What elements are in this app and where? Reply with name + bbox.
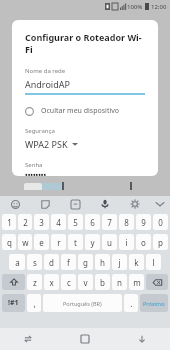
button[interactable]: p <box>153 234 168 250</box>
button[interactable]: h <box>95 254 110 270</box>
button[interactable]: !#1 <box>2 294 25 312</box>
staticText: s <box>33 257 37 268</box>
button[interactable]: , <box>27 294 41 312</box>
staticText: g <box>83 257 88 268</box>
staticText: 0 <box>158 217 163 228</box>
staticText: 2 <box>23 217 28 228</box>
staticText: l <box>152 257 155 268</box>
staticText: b <box>100 277 105 288</box>
staticText: k <box>134 257 139 268</box>
staticText: o <box>141 237 146 248</box>
button[interactable]: y <box>85 234 100 250</box>
button[interactable]: 7 <box>102 214 117 230</box>
button[interactable]: 3 <box>34 214 49 230</box>
button[interactable]: Recentes <box>0 328 56 350</box>
button[interactable]: e <box>34 234 49 250</box>
staticText: 6 <box>90 217 95 228</box>
staticText: r <box>57 237 61 248</box>
button[interactable]: Emoji <box>0 196 30 212</box>
button[interactable]: Apagar <box>146 274 168 290</box>
button[interactable]: 4 <box>51 214 66 230</box>
staticText: 1 <box>7 217 12 228</box>
staticText: •••••••• <box>25 171 47 176</box>
button[interactable]: GIF <box>60 196 90 212</box>
staticText: Próximo <box>143 300 165 307</box>
button[interactable]: s <box>27 254 42 270</box>
staticText: j <box>118 257 121 268</box>
staticText: Português (BR) <box>63 300 102 307</box>
button[interactable]: 5 <box>68 214 83 230</box>
staticText: , <box>33 298 36 309</box>
button[interactable]: Entrada por voz <box>90 196 120 212</box>
staticText: 7 <box>107 217 112 228</box>
staticText: AndroidAP <box>25 78 70 90</box>
staticText: !#1 <box>8 298 19 308</box>
button[interactable]: 2 <box>18 214 32 230</box>
button[interactable]: Configurações do teclado <box>120 196 150 212</box>
staticText: 4 <box>56 217 61 228</box>
button[interactable]: Voltar <box>113 328 170 350</box>
staticText: v <box>83 277 88 288</box>
button[interactable]: i <box>119 234 134 250</box>
staticText: 9 <box>141 217 146 228</box>
staticText: c <box>67 277 71 288</box>
button[interactable]: d <box>44 254 59 270</box>
button[interactable]: 0 <box>153 214 168 230</box>
staticText: h <box>100 257 105 268</box>
button[interactable]: a <box>9 254 25 270</box>
button[interactable]: q <box>2 234 16 250</box>
button[interactable]: Ocultar meu dispositivo <box>25 105 145 117</box>
other: Expandir <box>72 142 78 146</box>
staticText: t <box>74 237 77 248</box>
button[interactable]: 8 <box>119 214 134 230</box>
button[interactable]: t <box>68 234 83 250</box>
staticText: n <box>117 277 122 288</box>
staticText: 12:00 <box>151 3 167 11</box>
button[interactable]: WPA2 PSK <box>25 138 78 150</box>
button[interactable]: v <box>78 274 93 290</box>
staticText: z <box>33 277 37 288</box>
staticText: f <box>67 257 70 268</box>
button[interactable]: c <box>61 274 76 290</box>
button[interactable]: n <box>112 274 127 290</box>
button[interactable]: Início <box>56 328 113 350</box>
staticText: i <box>125 237 128 248</box>
staticText: Senha <box>25 161 43 169</box>
button[interactable]: b <box>95 274 110 290</box>
button[interactable]: g <box>78 254 93 270</box>
staticText: a <box>15 257 20 268</box>
button[interactable]: x <box>44 274 59 290</box>
staticText: Ocultar meu dispositivo <box>41 106 120 116</box>
button[interactable]: m <box>129 274 144 290</box>
staticText: y <box>90 237 95 248</box>
button[interactable]: o <box>136 234 151 250</box>
button[interactable]: 6 <box>85 214 100 230</box>
staticText: m <box>133 277 141 288</box>
button[interactable]: w <box>18 234 32 250</box>
button[interactable]: l <box>146 254 161 270</box>
button[interactable]: Ocultar teclado <box>150 196 170 212</box>
button[interactable]: Português (BR) <box>43 294 122 312</box>
button[interactable]: k <box>129 254 144 270</box>
button[interactable]: Stickers <box>30 196 60 212</box>
button[interactable]: Shift <box>2 274 25 290</box>
staticText: . <box>130 298 133 309</box>
staticText: u <box>107 237 112 248</box>
button[interactable]: Próximo <box>140 294 168 312</box>
button[interactable]: . <box>124 294 138 312</box>
staticText: d <box>49 257 54 268</box>
staticText: 3 <box>39 217 44 228</box>
staticText: Nome da rede <box>25 67 66 75</box>
button[interactable]: 1 <box>2 214 16 230</box>
button[interactable]: j <box>112 254 127 270</box>
staticText: Segurança <box>25 127 55 135</box>
button[interactable]: u <box>102 234 117 250</box>
staticText: x <box>49 277 54 288</box>
button[interactable]: r <box>51 234 66 250</box>
staticText: WPA2 PSK <box>25 138 68 150</box>
staticText: w <box>22 237 29 248</box>
staticText: 100% <box>127 3 143 11</box>
button[interactable]: f <box>61 254 76 270</box>
button[interactable]: 9 <box>136 214 151 230</box>
button[interactable]: z <box>27 274 42 290</box>
